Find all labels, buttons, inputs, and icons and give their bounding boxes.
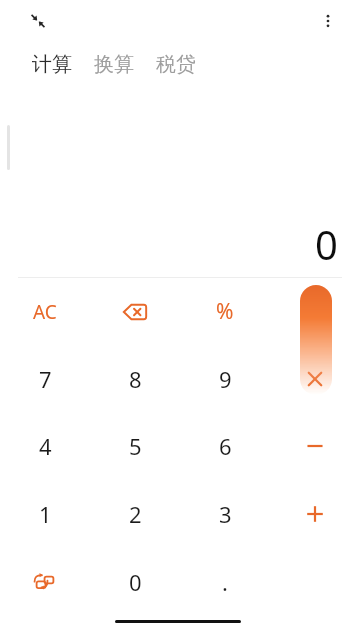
button[interactable]: 6 (180, 412, 270, 480)
staticText: . (222, 567, 228, 597)
staticText: 3 (219, 499, 232, 529)
button[interactable]: 4 (0, 412, 90, 480)
button[interactable]: Multiply (270, 345, 360, 412)
staticText: 1 (39, 499, 52, 529)
staticText: 0 (129, 567, 142, 597)
staticText: 9 (219, 364, 232, 394)
button[interactable]: Collapse (22, 5, 54, 37)
button[interactable]: 1 (0, 480, 90, 548)
staticText: 0 (315, 217, 338, 271)
staticText: 2 (129, 499, 142, 529)
staticText: 7 (39, 364, 52, 394)
staticText: % (216, 297, 234, 326)
button[interactable]: 5 (90, 412, 180, 480)
staticText: 4 (39, 431, 52, 461)
button[interactable]: Plus (270, 480, 360, 548)
button[interactable]: 3 (180, 480, 270, 548)
staticText: 计算 (32, 52, 72, 77)
button[interactable]: Equals (300, 285, 332, 395)
button[interactable]: More options (312, 5, 344, 37)
staticText: 换算 (94, 52, 134, 77)
staticText: AC (33, 299, 57, 325)
button[interactable]: 0 (90, 548, 180, 616)
button[interactable]: Divide (270, 278, 360, 345)
staticText: 5 (129, 431, 142, 461)
button[interactable]: AC (0, 278, 90, 345)
button[interactable]: 2 (90, 480, 180, 548)
staticText: 8 (129, 364, 142, 394)
button[interactable]: 9 (180, 345, 270, 412)
button[interactable]: Backspace (90, 278, 180, 345)
button[interactable]: % (180, 278, 270, 345)
staticText: 税贷 (156, 52, 196, 77)
button[interactable]: 8 (90, 345, 180, 412)
button[interactable]: 换算 (92, 48, 136, 81)
button[interactable]: Convert (0, 548, 90, 616)
button[interactable]: 计算 (30, 48, 74, 81)
button[interactable]: 7 (0, 345, 90, 412)
button[interactable]: Minus (270, 412, 360, 480)
button[interactable]: . (180, 548, 270, 616)
staticText: 6 (219, 431, 232, 461)
button[interactable]: 税贷 (154, 48, 198, 81)
